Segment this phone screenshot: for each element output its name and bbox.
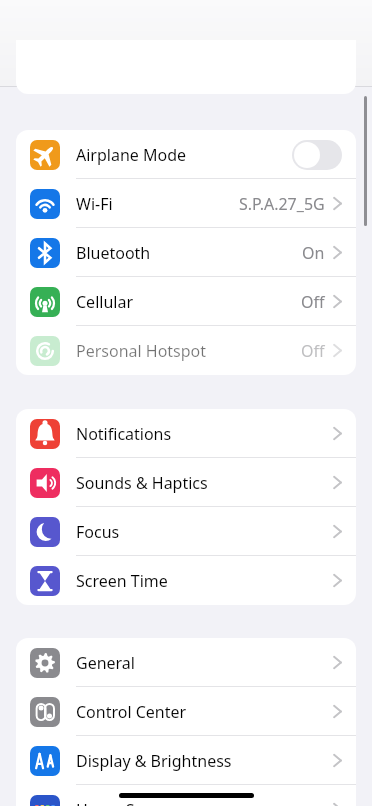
button[interactable]: Wi-Fi (16, 179, 356, 228)
button[interactable]: Sounds & Haptics (16, 458, 356, 507)
staticText: Cellular (76, 291, 133, 313)
staticText: Personal Hotspot (76, 340, 207, 362)
staticText: Display & Brightness (76, 750, 232, 772)
staticText: Control Center (76, 701, 187, 723)
button[interactable]: Notifications (16, 409, 356, 458)
button[interactable]: Display & Brightness (16, 736, 356, 785)
button[interactable]: Bluetooth (16, 228, 356, 277)
staticText: Off (301, 291, 325, 313)
staticText: Screen Time (76, 570, 168, 592)
staticText: Bluetooth (76, 242, 151, 264)
button[interactable]: Screen Time (16, 556, 356, 605)
button[interactable]: Airplane Mode (16, 130, 356, 179)
staticText: S.P.A.27_5G (239, 193, 325, 215)
button[interactable]: General (16, 638, 356, 687)
staticText: General (76, 652, 135, 674)
button[interactable]: Airplane Mode toggle (292, 140, 342, 170)
staticText: On (302, 242, 325, 264)
button[interactable]: Personal Hotspot (16, 326, 356, 375)
button[interactable]: Focus (16, 507, 356, 556)
button[interactable]: Home Screen (16, 785, 356, 806)
button[interactable]: Cellular (16, 277, 356, 326)
staticText: Wi-Fi (76, 193, 113, 215)
staticText: Home Screen (76, 799, 177, 806)
staticText: Airplane Mode (76, 144, 187, 166)
staticText: Focus (76, 521, 120, 543)
staticText: Off (301, 340, 325, 362)
staticText: Sounds & Haptics (76, 472, 208, 494)
staticText: Notifications (76, 423, 172, 445)
button[interactable]: Control Center (16, 687, 356, 736)
